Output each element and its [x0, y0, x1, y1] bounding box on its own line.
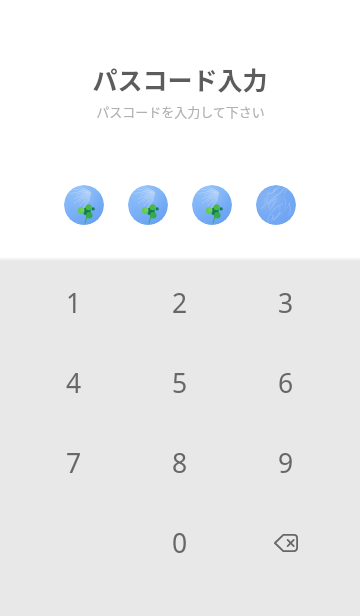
staticText: 6 — [278, 365, 294, 401]
staticText: パスコード入力 — [92, 61, 268, 97]
button[interactable]: 1 — [21, 263, 127, 343]
button[interactable]: 0 — [127, 503, 233, 583]
button[interactable]: 6 — [233, 343, 339, 423]
button[interactable]: 3 — [233, 263, 339, 343]
staticText: 5 — [172, 365, 188, 401]
staticText: 0 — [172, 525, 188, 561]
staticText: 1 — [66, 285, 82, 321]
button[interactable]: 7 — [21, 423, 127, 503]
button[interactable]: 2 — [127, 263, 233, 343]
button[interactable]: 4 — [21, 343, 127, 423]
staticText: 3 — [278, 285, 294, 321]
staticText: 8 — [172, 445, 188, 481]
button[interactable]: 8 — [127, 423, 233, 503]
button[interactable]: Backspace — [233, 503, 339, 583]
staticText: 9 — [278, 445, 294, 481]
button[interactable]: 5 — [127, 343, 233, 423]
staticText: 2 — [172, 285, 188, 321]
staticText: パスコードを入力して下さい — [96, 102, 265, 121]
staticText: 4 — [66, 365, 82, 401]
staticText: 7 — [66, 445, 82, 481]
button[interactable]: 9 — [233, 423, 339, 503]
